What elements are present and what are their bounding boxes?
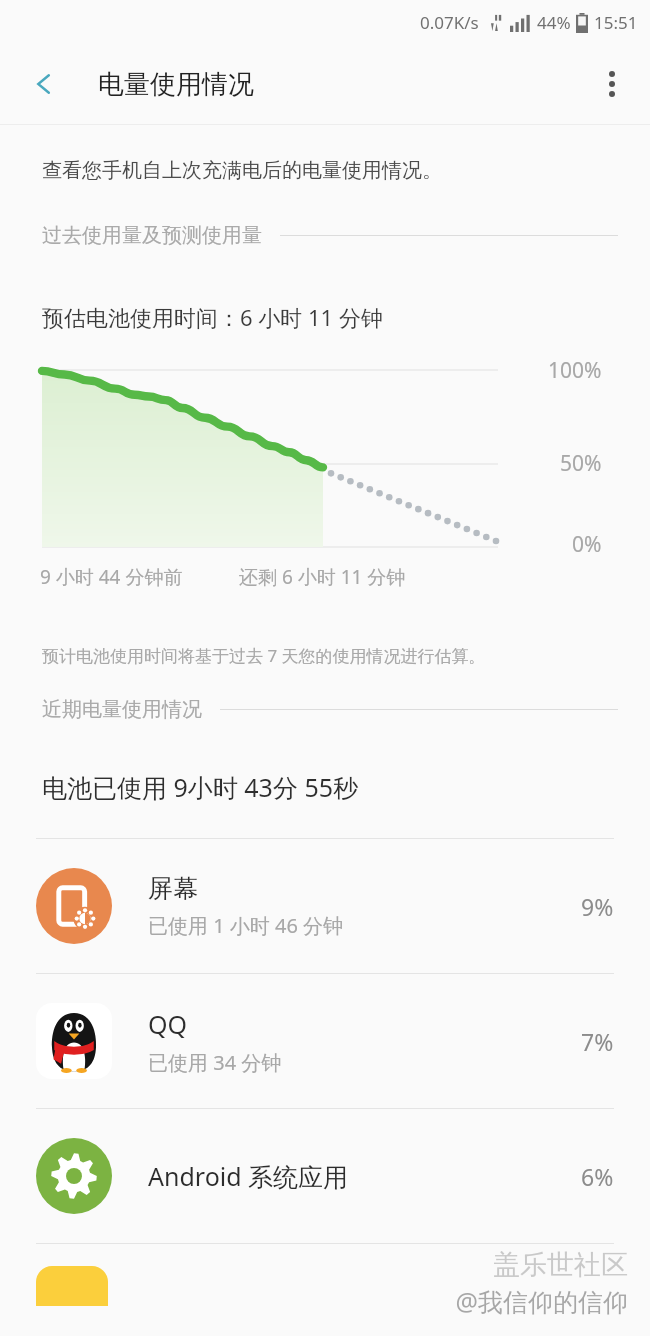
button[interactable]: Android 系统应用 — [0, 1109, 650, 1243]
staticText: 0.07K/s — [420, 11, 479, 34]
staticText: 0% — [572, 530, 602, 554]
staticText: 屏幕 — [148, 873, 198, 904]
button[interactable]: More options — [588, 60, 636, 108]
staticText: 查看您手机自上次充满电后的电量使用情况。 — [42, 158, 442, 183]
staticText: 100% — [548, 356, 602, 385]
button[interactable]: QQ — [0, 974, 650, 1108]
staticText: @我信仰的信仰 — [455, 1284, 628, 1318]
staticText: 15:51 — [594, 11, 638, 34]
staticText: 预计电池使用时间将基于过去 7 天您的使用情况进行估算。 — [42, 644, 486, 667]
staticText: 50% — [560, 449, 602, 478]
staticText: 7% — [581, 1026, 614, 1057]
staticText: 9 小时 44 分钟前 — [40, 564, 183, 590]
staticText: 已使用 34 分钟 — [148, 1049, 282, 1076]
button[interactable]: 屏幕 — [0, 839, 650, 973]
staticText: Android 系统应用 — [148, 1159, 349, 1193]
staticText: 6% — [581, 1161, 614, 1192]
staticText: 电量使用情况 — [98, 68, 254, 101]
staticText: 盖乐世社区 — [493, 1248, 628, 1282]
button[interactable]: Back — [20, 60, 68, 108]
staticText: 已使用 1 小时 46 分钟 — [148, 912, 344, 939]
staticText: 预估电池使用时间：6 小时 11 分钟 — [42, 302, 383, 332]
staticText: 电池已使用 9小时 43分 55秒 — [42, 770, 359, 804]
staticText: 还剩 6 小时 11 分钟 — [239, 564, 406, 590]
staticText: 9% — [581, 891, 614, 922]
staticText: QQ — [148, 1007, 188, 1041]
staticText: 44% — [537, 11, 571, 34]
staticText: 过去使用量及预测使用量 — [42, 223, 262, 248]
staticText: 近期电量使用情况 — [42, 697, 202, 722]
